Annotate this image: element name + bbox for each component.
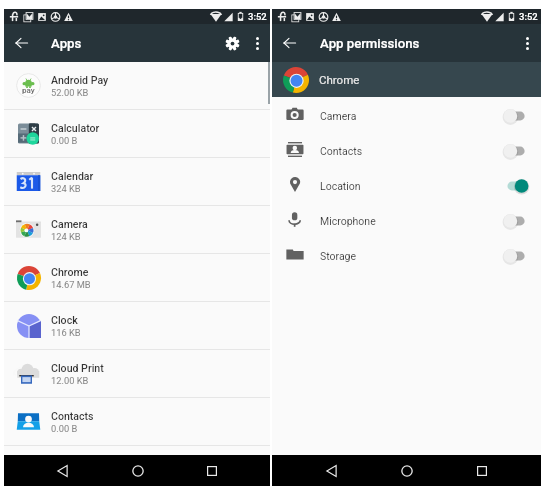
- staticText: Calculator: [51, 122, 100, 134]
- staticText: Clock: [51, 314, 78, 326]
- button[interactable]: More options: [246, 24, 268, 62]
- button[interactable]: Home: [391, 455, 422, 486]
- button[interactable]: Back: [316, 455, 347, 486]
- staticText: Camera: [51, 218, 88, 230]
- button[interactable]: Recents: [196, 455, 227, 486]
- staticText: 0.00 B: [51, 423, 78, 434]
- button[interactable]: pay: [4, 62, 270, 109]
- staticText: Contacts: [320, 145, 363, 157]
- button[interactable]: Cloud Print: [4, 350, 270, 397]
- button[interactable]: Camera: [272, 97, 541, 132]
- button[interactable]: Settings: [218, 24, 246, 62]
- staticText: Contacts: [51, 410, 94, 422]
- staticText: Storage: [320, 250, 357, 262]
- button[interactable]: Camera: [4, 206, 270, 253]
- button[interactable]: Calculator: [4, 110, 270, 157]
- button[interactable]: Chrome: [272, 62, 541, 97]
- staticText: App permissions: [320, 36, 420, 51]
- button[interactable]: Calendar: [4, 158, 270, 205]
- button[interactable]: Storage: [272, 237, 541, 272]
- staticText: Location: [320, 180, 361, 192]
- staticText: Apps: [51, 36, 82, 51]
- staticText: 3:52: [519, 11, 538, 22]
- button[interactable]: Back: [47, 455, 78, 486]
- staticText: Android Pay: [51, 74, 109, 86]
- staticText: 52.00 KB: [51, 87, 89, 98]
- staticText: 14.67 MB: [51, 279, 91, 290]
- button[interactable]: Chrome: [4, 254, 270, 301]
- button[interactable]: Back: [272, 24, 307, 62]
- staticText: Cloud Print: [51, 362, 104, 374]
- button[interactable]: Back: [4, 24, 39, 62]
- staticText: Calendar: [51, 170, 94, 182]
- staticText: Microphone: [320, 215, 376, 227]
- button[interactable]: Clock: [4, 302, 270, 349]
- staticText: 12.00 KB: [51, 375, 89, 386]
- button[interactable]: Home: [122, 455, 153, 486]
- staticText: pay: [22, 86, 35, 95]
- staticText: Chrome: [51, 266, 89, 278]
- button[interactable]: Recents: [466, 455, 497, 486]
- button[interactable]: Microphone: [272, 202, 541, 237]
- button[interactable]: Location: [272, 167, 541, 202]
- button[interactable]: Contacts: [272, 132, 541, 167]
- staticText: Camera: [320, 110, 357, 122]
- staticText: 324 KB: [51, 183, 81, 194]
- staticText: Chrome: [319, 73, 360, 86]
- staticText: 116 KB: [51, 327, 81, 338]
- staticText: 0.00 B: [51, 135, 78, 146]
- staticText: 124 KB: [51, 231, 81, 242]
- staticText: 3:52: [248, 11, 267, 22]
- button[interactable]: More options: [516, 24, 538, 62]
- button[interactable]: Contacts: [4, 398, 270, 445]
